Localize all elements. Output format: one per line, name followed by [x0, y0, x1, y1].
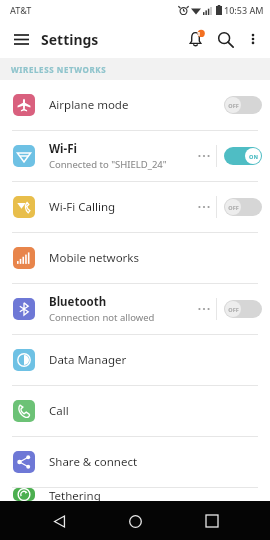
button[interactable]: Bluetooth	[0, 284, 270, 334]
button[interactable]: Off	[224, 96, 262, 114]
staticText: Data Manager	[49, 352, 127, 368]
staticText: Share & connect	[49, 454, 138, 470]
button[interactable]: On	[224, 147, 262, 165]
staticText: Wi-Fi	[49, 141, 77, 157]
staticText: AT&T	[10, 4, 32, 16]
button[interactable]: Mobile networks	[0, 233, 270, 283]
staticText: ON	[249, 153, 258, 160]
button[interactable]: Call	[0, 386, 270, 436]
button[interactable]: Off	[224, 300, 262, 318]
button[interactable]: Off	[224, 198, 262, 216]
staticText: WIRELESS NETWORKS	[11, 64, 107, 75]
button[interactable]: Home	[117, 503, 153, 539]
button[interactable]: More options	[240, 26, 266, 52]
staticText: OFF	[228, 306, 239, 313]
button[interactable]: Wi-Fi Calling options	[192, 182, 216, 232]
button[interactable]: Menu	[10, 28, 32, 50]
button[interactable]: Airplane mode	[0, 80, 270, 130]
staticText: Connected to "SHIELD_24"	[49, 158, 167, 171]
button[interactable]: Search	[210, 24, 240, 54]
button[interactable]: Wi-Fi Calling	[0, 182, 270, 232]
button[interactable]: Recents	[194, 503, 230, 539]
staticText: 1	[197, 30, 201, 38]
staticText: Bluetooth	[49, 294, 107, 310]
button[interactable]: Back	[41, 503, 77, 539]
staticText: Tethering	[49, 488, 101, 501]
button[interactable]: Tethering	[0, 488, 270, 501]
staticText: Wi-Fi Calling	[49, 199, 116, 215]
staticText: Connection not allowed	[49, 311, 155, 324]
staticText: Settings	[41, 30, 99, 49]
staticText: 10:53 AM	[224, 4, 264, 16]
button[interactable]: Wi-Fi	[0, 131, 270, 181]
button[interactable]: Notifications	[180, 24, 210, 54]
staticText: Call	[49, 403, 69, 419]
staticText: Mobile networks	[49, 250, 140, 266]
button[interactable]: Data Manager	[0, 335, 270, 385]
button[interactable]: Share & connect	[0, 437, 270, 487]
staticText: OFF	[228, 102, 239, 109]
staticText: Airplane mode	[49, 97, 129, 113]
button[interactable]: Bluetooth options	[192, 284, 216, 334]
staticText: OFF	[228, 204, 239, 211]
button[interactable]: Wi-Fi options	[192, 131, 216, 181]
